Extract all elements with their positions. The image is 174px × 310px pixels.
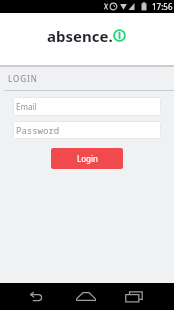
button[interactable]: Email [13, 97, 161, 116]
button[interactable] [58, 283, 116, 310]
button[interactable] [0, 283, 58, 310]
staticText: Email [16, 101, 37, 112]
button[interactable]: Login [51, 148, 123, 169]
staticText: absence. [47, 26, 113, 46]
staticText: LOGIN [8, 73, 38, 84]
staticText: Password [16, 124, 60, 136]
staticText: Login [77, 153, 98, 164]
button[interactable]: Password [13, 121, 161, 139]
staticText: 17:56 [152, 1, 173, 12]
button[interactable] [116, 283, 174, 310]
